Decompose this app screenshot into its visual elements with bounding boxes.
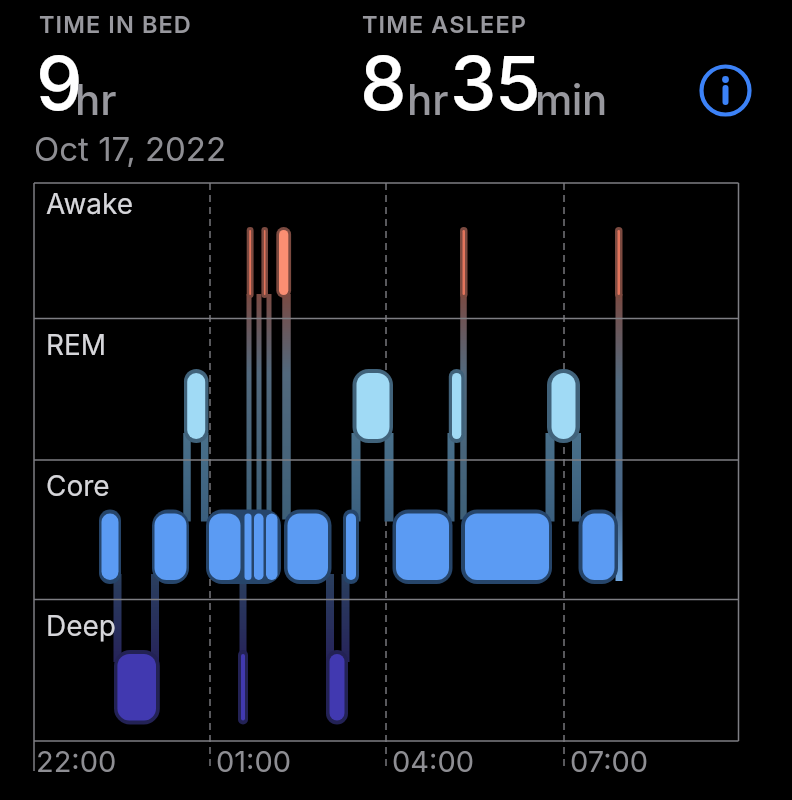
staticText: 04:00: [392, 744, 474, 779]
staticText: Core: [46, 469, 110, 503]
staticText: 35: [450, 38, 540, 128]
staticText: hr: [75, 74, 117, 125]
staticText: hr: [407, 74, 449, 125]
staticText: TIME ASLEEP: [362, 10, 527, 38]
staticText: REM: [46, 328, 107, 362]
staticText: 9: [36, 38, 83, 128]
staticText: 07:00: [570, 744, 649, 779]
staticText: Oct 17, 2022: [34, 129, 227, 169]
button[interactable]: [699, 64, 752, 117]
staticText: 8: [360, 38, 407, 128]
staticText: Awake: [46, 187, 134, 221]
staticText: TIME IN BED: [39, 10, 192, 38]
staticText: 01:00: [216, 744, 292, 779]
staticText: Deep: [46, 609, 116, 643]
staticText: min: [535, 74, 607, 125]
staticText: 22:00: [36, 744, 117, 779]
